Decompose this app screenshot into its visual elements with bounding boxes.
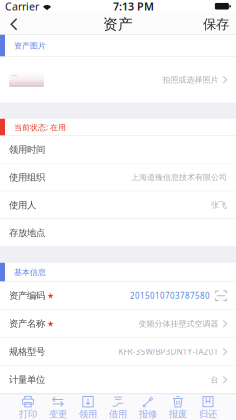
staticText: 台 [210, 375, 218, 385]
staticText: 领用 [79, 408, 97, 420]
button[interactable]: 报修 [133, 394, 163, 420]
button[interactable]: 计量单位 [0, 366, 236, 394]
staticText: 打印 [19, 408, 37, 420]
button[interactable]: 资产编码 [0, 282, 236, 310]
staticText: 计量单位 [9, 374, 45, 385]
staticText: 上海道臻信息技术有限公司 [131, 172, 227, 182]
button[interactable]: 资产名称 [0, 310, 236, 338]
button[interactable]: 使用组织 [0, 163, 236, 191]
staticText: 存放地点 [9, 227, 45, 239]
button[interactable]: 归还 [193, 394, 223, 420]
button[interactable]: 领用 [73, 394, 103, 420]
staticText: ★ [47, 319, 54, 328]
button[interactable]: 拍照或选择照片 [0, 57, 236, 103]
staticText: 拍照或选择照片 [162, 75, 218, 85]
button[interactable]: 报废 [163, 394, 193, 420]
button[interactable]: 打印 [13, 394, 43, 420]
button[interactable]: 变更 [43, 394, 73, 420]
staticText: 报修 [139, 408, 157, 420]
staticText: 变更 [49, 408, 67, 420]
button[interactable]: 存放地点 [0, 219, 236, 247]
staticText: 资产 [103, 15, 133, 33]
button[interactable]: 规格型号 [0, 338, 236, 366]
staticText: KFR-35W/BP3DN1Y-TA201 [118, 346, 218, 357]
staticText: 2015010703787580 [130, 290, 210, 301]
staticText: 变频分体挂壁式空调器 [138, 319, 218, 329]
staticText: 基本信息 [14, 267, 46, 277]
staticText: 资产编码 [9, 290, 45, 301]
staticText: 7:13 PM [113, 0, 154, 13]
button[interactable]: 使用人 [0, 191, 236, 219]
staticText: Carrier [5, 0, 39, 13]
staticText: 资产图片 [14, 41, 46, 51]
staticText: 使用组织 [9, 172, 45, 183]
staticText: 领用时间 [9, 144, 45, 155]
button[interactable]: 返回 [4, 14, 24, 35]
staticText: 当前状态: 在用 [14, 122, 66, 132]
button[interactable]: 借用 [103, 394, 133, 420]
staticText: 张飞 [211, 200, 227, 210]
staticText: 借用 [109, 408, 127, 420]
staticText: 资产名称 [9, 318, 45, 329]
staticText: ★ [47, 291, 54, 300]
button[interactable]: 领用时间 [0, 136, 236, 164]
staticText: 使用人 [9, 199, 36, 211]
staticText: 归还 [199, 408, 217, 420]
staticText: 规格型号 [9, 346, 45, 357]
button[interactable]: 保存 [200, 14, 232, 35]
staticText: 报废 [169, 408, 187, 420]
staticText: 保存 [203, 16, 229, 32]
